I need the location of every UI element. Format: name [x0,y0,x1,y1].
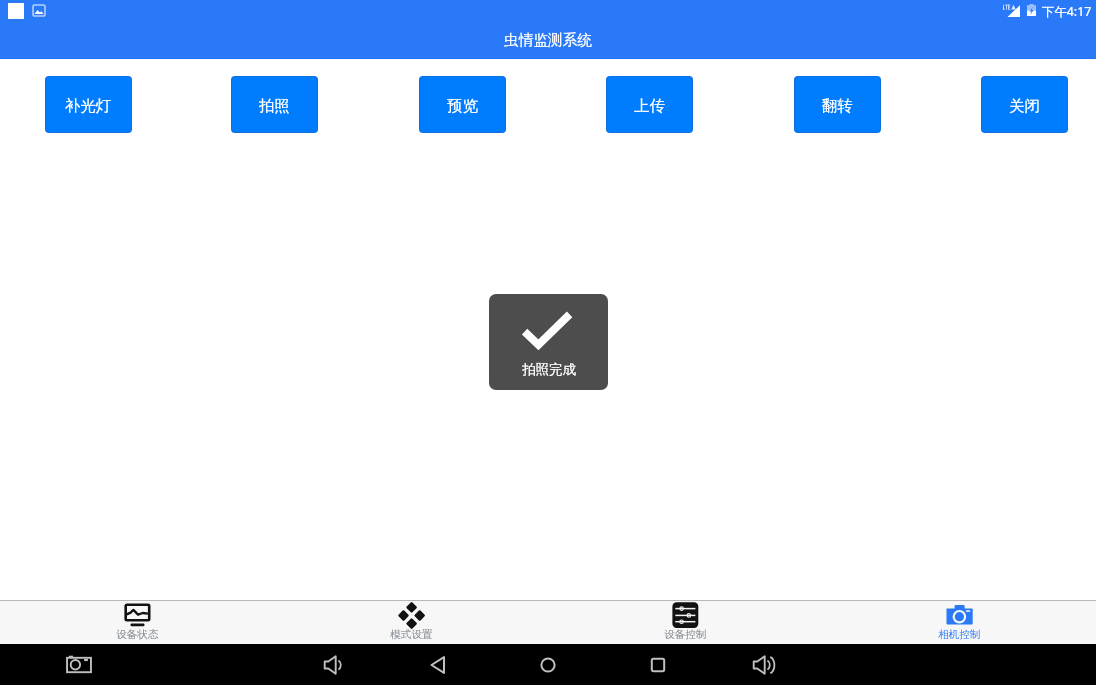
button[interactable]: 预览 [419,76,506,133]
staticText: 拍照完成 [522,361,576,376]
staticText: 关闭 [1009,96,1040,115]
button[interactable]: 相机控制 [822,601,1096,644]
staticText: 预览 [447,96,478,115]
staticText: 模式设置 [390,628,433,641]
button[interactable]: Volume down [313,644,353,685]
staticText: 翻转 [822,96,853,115]
staticText: 设备控制 [664,628,707,641]
button[interactable]: Volume up [742,644,782,685]
staticText: 虫情监测系统 [504,31,593,50]
button[interactable]: 翻转 [794,76,881,133]
button[interactable]: 设备控制 [548,601,822,644]
other: Battery charging [1027,4,1036,16]
button[interactable]: 设备状态 [0,601,274,644]
button[interactable]: 补光灯 [45,76,132,133]
button[interactable]: 上传 [606,76,693,133]
button[interactable]: 模式设置 [274,601,548,644]
button[interactable]: Home [528,644,568,685]
button[interactable]: Recents [638,644,678,685]
button[interactable]: Screenshot [59,644,99,685]
other: LTE signal [1003,4,1020,17]
staticText: 上传 [634,96,665,115]
staticText: 补光灯 [65,96,112,115]
button[interactable]: 关闭 [981,76,1068,133]
staticText: 相机控制 [938,628,981,641]
staticText: 拍照 [259,96,290,115]
button[interactable]: Back [418,644,458,685]
button[interactable]: 拍照 [231,76,318,133]
staticText: 设备状态 [116,628,159,641]
other: Screenshot captured [33,5,45,16]
staticText: 下午4:17 [1042,3,1092,20]
